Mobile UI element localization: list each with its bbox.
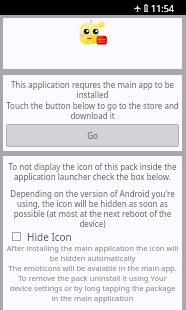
staticText: Depending on the version of Android you'…	[6, 188, 179, 229]
staticText: This application requres the main app to…	[6, 79, 179, 100]
other: Airplane mode	[134, 4, 141, 12]
staticText: Touch the button below to go to the stor…	[6, 100, 179, 121]
staticText: After installing the main application th…	[6, 243, 179, 303]
staticText: Hide Icon	[27, 230, 72, 242]
staticText: 11:54	[151, 2, 175, 14]
other: Battery	[144, 4, 148, 12]
staticText: Go	[87, 130, 98, 141]
button[interactable]: Go	[6, 124, 179, 147]
staticText: To not display the icon of this pack ins…	[6, 161, 179, 182]
button[interactable]: Hide Icon	[6, 230, 179, 242]
